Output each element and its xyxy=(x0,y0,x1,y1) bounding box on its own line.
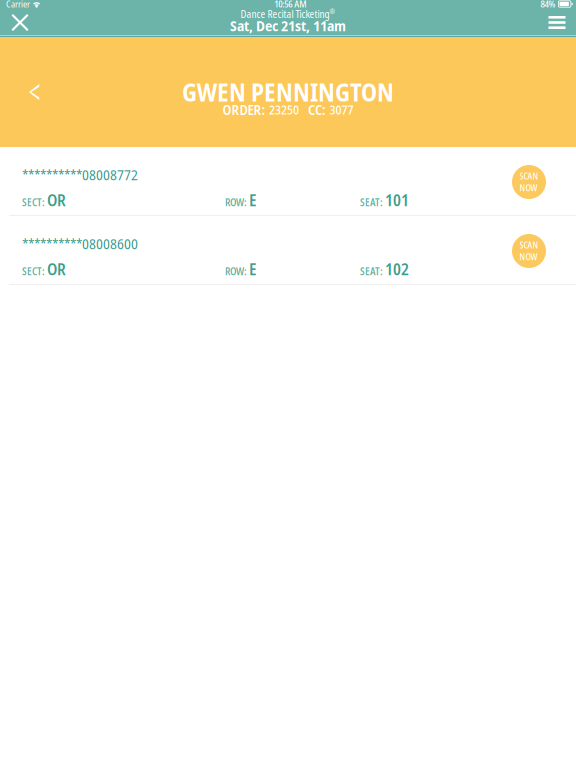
staticText: ROW: xyxy=(225,195,247,209)
button[interactable]: SCAN NOW xyxy=(512,234,546,268)
staticText: Carrier xyxy=(6,0,30,10)
staticText: 84% xyxy=(540,0,555,10)
staticText: 101 xyxy=(385,189,409,211)
staticText: OR xyxy=(47,258,66,280)
staticText: E xyxy=(249,258,257,280)
staticText: SCAN NOW xyxy=(519,170,538,194)
staticText: Sat, Dec 21st, 11am xyxy=(230,15,346,35)
staticText: 102 xyxy=(385,258,409,280)
staticText: Dance Recital Ticketing xyxy=(240,7,329,21)
staticText: 23250 xyxy=(269,101,299,118)
staticText: SCAN NOW xyxy=(519,239,538,263)
staticText: GWEN PENNINGTON xyxy=(182,75,394,109)
staticText: ORDER: xyxy=(222,100,265,119)
staticText: 3077 xyxy=(329,101,353,118)
button[interactable]: Back xyxy=(15,70,53,114)
staticText: OR xyxy=(47,189,66,211)
staticText: SEAT: xyxy=(360,195,383,209)
staticText: SECT: xyxy=(22,264,45,278)
staticText: 10:56 AM xyxy=(274,0,306,10)
staticText: **********08008772 xyxy=(22,164,138,184)
staticText: SEAT: xyxy=(360,264,383,278)
button[interactable]: SCAN NOW xyxy=(512,165,546,199)
staticText: E xyxy=(249,189,257,211)
staticText: SECT: xyxy=(22,195,45,209)
staticText: CC: xyxy=(308,100,326,119)
button[interactable]: Close xyxy=(3,6,36,39)
button[interactable]: Menu xyxy=(540,8,573,37)
staticText: **********08008600 xyxy=(22,233,138,253)
staticText: ROW: xyxy=(225,264,247,278)
staticText: ® xyxy=(329,7,335,16)
